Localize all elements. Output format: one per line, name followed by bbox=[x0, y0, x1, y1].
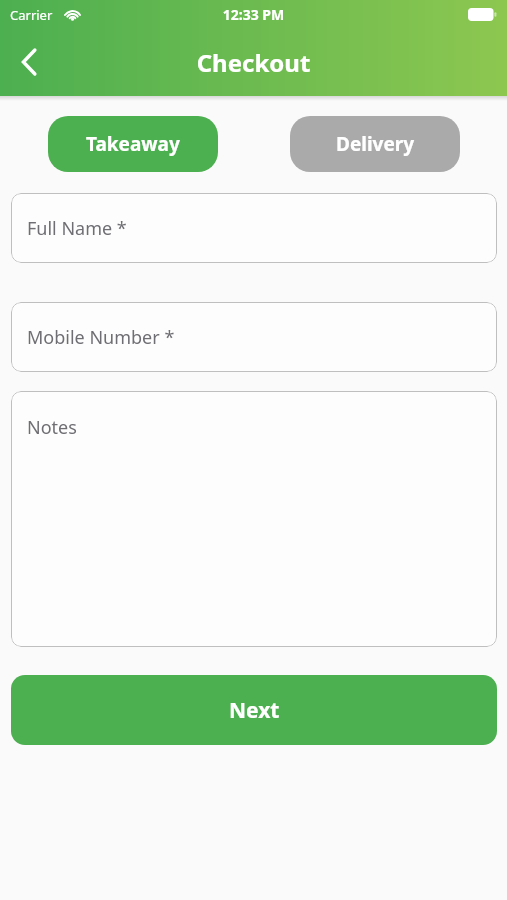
button[interactable]: Next bbox=[11, 675, 497, 745]
button[interactable]: Notes bbox=[11, 391, 497, 647]
button[interactable]: Mobile Number * bbox=[11, 302, 497, 372]
staticText: 12:33 PM bbox=[0, 5, 507, 24]
staticText: Delivery bbox=[336, 131, 415, 157]
staticText: Takeaway bbox=[86, 131, 180, 157]
button[interactable]: Back bbox=[6, 39, 52, 85]
staticText: Carrier bbox=[10, 6, 53, 24]
staticText: Mobile Number * bbox=[27, 325, 175, 350]
staticText: Notes bbox=[27, 415, 77, 440]
staticText: Next bbox=[229, 696, 280, 725]
button[interactable]: Delivery bbox=[290, 116, 460, 172]
button[interactable]: Full Name * bbox=[11, 193, 497, 263]
staticText: Checkout bbox=[0, 46, 507, 79]
staticText: Full Name * bbox=[27, 216, 127, 241]
button[interactable]: Takeaway bbox=[48, 116, 218, 172]
